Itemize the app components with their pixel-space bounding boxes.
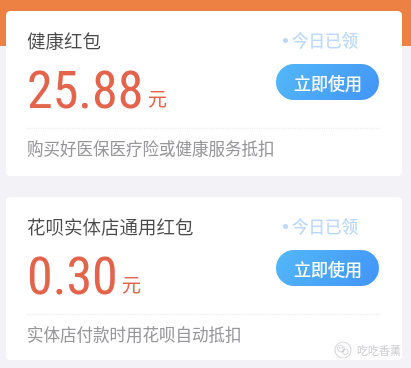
staticText: 花呗实体店通用红包 bbox=[27, 213, 194, 240]
staticText: 元 bbox=[122, 270, 142, 298]
staticText: 0.30 bbox=[27, 246, 118, 307]
staticText: 元 bbox=[148, 84, 168, 112]
staticText: 吃吃香薰 bbox=[357, 342, 401, 358]
button[interactable]: 立即使用 bbox=[276, 64, 379, 100]
staticText: 立即使用 bbox=[294, 256, 362, 281]
staticText: 今日已领 bbox=[292, 28, 358, 52]
button[interactable]: 今日已领 bbox=[283, 214, 358, 238]
button[interactable]: 今日已领 bbox=[283, 28, 358, 52]
staticText: 购买好医保医疗险或健康服务抵扣 bbox=[27, 136, 275, 160]
button[interactable]: 健康红包 bbox=[6, 11, 402, 176]
staticText: 25.88 bbox=[27, 60, 144, 121]
staticText: 立即使用 bbox=[294, 70, 362, 95]
staticText: 实体店付款时用花呗自动抵扣 bbox=[27, 322, 242, 346]
button[interactable]: 花呗实体店通用红包 bbox=[6, 197, 402, 360]
staticText: 健康红包 bbox=[27, 27, 102, 54]
staticText: 今日已领 bbox=[292, 214, 358, 238]
button[interactable]: 立即使用 bbox=[276, 250, 379, 286]
